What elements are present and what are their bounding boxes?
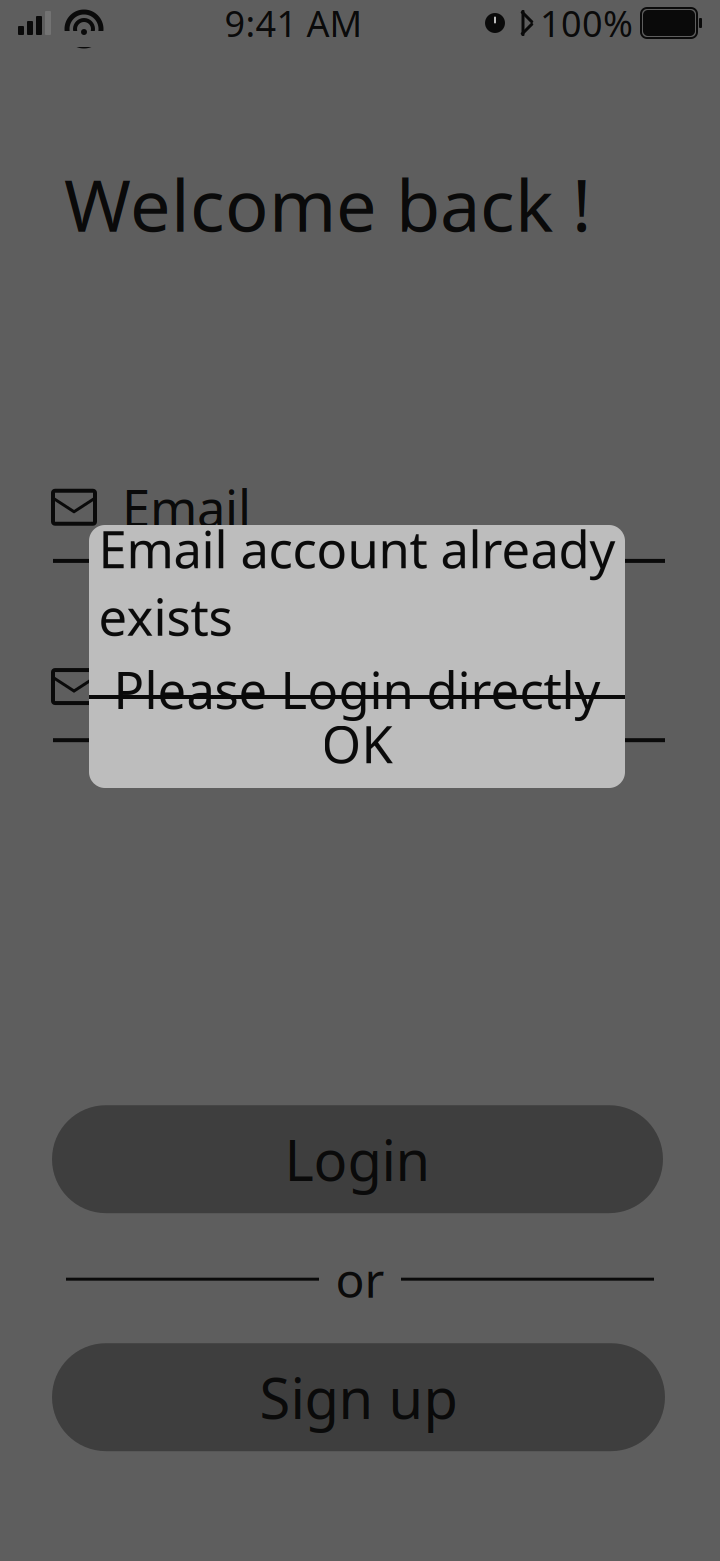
staticText: 9:41 AM: [224, 0, 362, 47]
staticText: Login: [284, 1122, 430, 1196]
staticText: Email account already exists: [98, 515, 615, 650]
staticText: Please Login directly: [113, 656, 600, 723]
button[interactable]: Sign up: [52, 1343, 665, 1451]
staticText: 100%: [540, 0, 633, 47]
staticText: Sign up: [259, 1360, 457, 1434]
staticText: Welcome back !: [64, 156, 591, 252]
staticText: or: [335, 1247, 384, 1311]
staticText: Email: [122, 474, 251, 541]
button[interactable]: OK: [89, 699, 625, 788]
button[interactable]: Login: [52, 1105, 663, 1213]
staticText: OK: [321, 710, 392, 777]
staticText: Password: [122, 653, 351, 720]
